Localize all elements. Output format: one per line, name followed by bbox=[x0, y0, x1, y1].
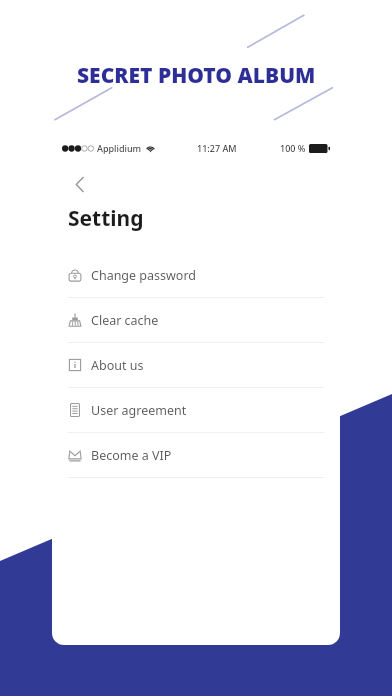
staticText: Clear cache bbox=[91, 312, 159, 329]
button[interactable]: About us bbox=[52, 343, 340, 387]
staticText: Setting bbox=[68, 204, 144, 233]
button[interactable]: Change password bbox=[52, 253, 340, 297]
staticText: SECRET PHOTO ALBUM bbox=[77, 61, 316, 90]
staticText: User agreement bbox=[91, 402, 187, 419]
button[interactable]: Back bbox=[62, 166, 98, 202]
button[interactable]: Become a VIP bbox=[52, 433, 340, 477]
button[interactable]: User agreement bbox=[52, 388, 340, 432]
staticText: Applidium bbox=[97, 142, 142, 154]
staticText: About us bbox=[91, 357, 144, 374]
staticText: 100 % bbox=[280, 142, 306, 154]
staticText: Change password bbox=[91, 267, 197, 284]
button[interactable]: Clear cache bbox=[52, 298, 340, 342]
staticText: 11:27 AM bbox=[197, 142, 237, 154]
staticText: Become a VIP bbox=[91, 447, 172, 464]
